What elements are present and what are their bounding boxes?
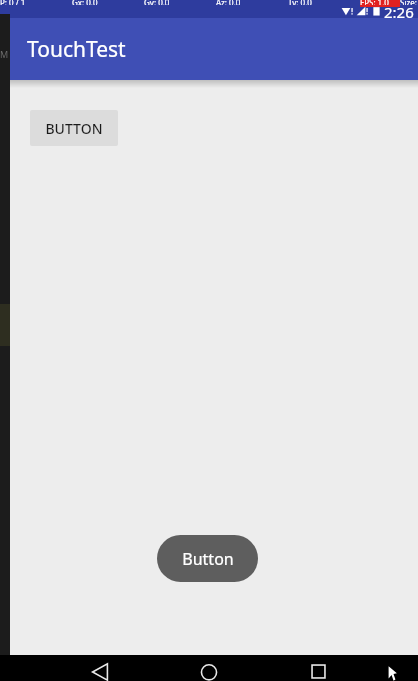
button[interactable]: Home — [192, 663, 226, 681]
staticText: P: 0 / 1 — [0, 0, 26, 5]
button[interactable]: BUTTON — [30, 110, 118, 146]
staticText: Gx: 0.0 — [72, 0, 98, 5]
staticText: BUTTON — [45, 119, 103, 138]
button[interactable]: Back — [84, 663, 118, 681]
button[interactable]: Recent apps — [301, 663, 335, 681]
staticText: TouchTest — [27, 35, 126, 64]
staticText: Tv: 0.0 — [288, 0, 312, 5]
button[interactable]: Button — [157, 535, 258, 582]
staticText: Gy: 0.0 — [144, 0, 170, 5]
staticText: FPS: 1.0 — [360, 0, 389, 5]
staticText: M — [0, 48, 9, 60]
staticText: 2:26 — [384, 2, 414, 20]
staticText: Button — [182, 548, 234, 570]
staticText: Size: — [400, 0, 417, 5]
staticText: Az: 0.0 — [216, 0, 241, 5]
